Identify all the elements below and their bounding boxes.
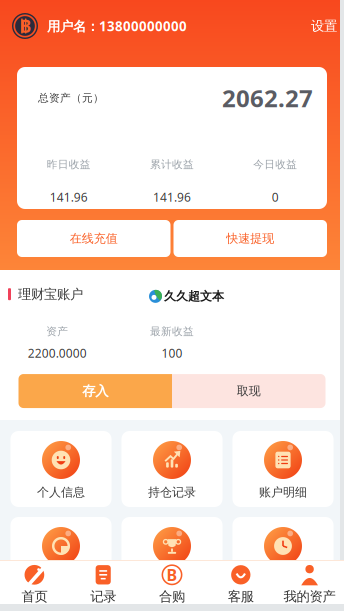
staticText: 首页 [21, 588, 47, 605]
staticText: 资产 [46, 325, 68, 338]
staticText: 0 [272, 189, 279, 205]
staticText: 持仓记录 [148, 485, 196, 500]
button[interactable]: 在线充值 [17, 220, 170, 257]
button[interactable]: B [138, 561, 206, 604]
staticText: 设置 [311, 18, 337, 34]
staticText: 昨日收益 [47, 158, 91, 171]
button[interactable] [232, 517, 333, 593]
staticText: 2062.27 [222, 82, 313, 114]
staticText: 理财宝账户 [18, 286, 83, 302]
staticText: 2200.0000 [28, 345, 87, 361]
staticText: 账户明细 [259, 485, 307, 500]
staticText: 快速提现 [226, 231, 274, 246]
button[interactable]: 记录 [69, 561, 138, 604]
staticText: 累计收益 [150, 158, 194, 171]
staticText: 用户名：13800000000 [47, 17, 187, 35]
staticText: 取现 [237, 384, 261, 398]
button[interactable] [10, 517, 111, 593]
button[interactable]: 我的资产 [275, 561, 344, 604]
staticText: 今日收益 [253, 158, 297, 171]
button[interactable]: 取现 [172, 374, 325, 408]
staticText: 总资产（元） [38, 91, 104, 104]
button[interactable]: 持仓记录 [121, 431, 222, 507]
button[interactable]: 账户明细 [232, 431, 333, 507]
button[interactable]: 客服 [206, 561, 275, 604]
staticText: 我的资产 [284, 588, 336, 605]
staticText: 久久超文本 [164, 289, 224, 304]
staticText: B [20, 14, 32, 37]
staticText: 141.96 [50, 189, 88, 205]
button[interactable]: 设置 [308, 13, 340, 39]
button[interactable]: 快速提现 [173, 220, 327, 257]
staticText: 合购 [159, 588, 185, 605]
staticText: 个人信息 [37, 485, 85, 500]
staticText: 在线充值 [70, 231, 118, 246]
staticText: 141.96 [153, 189, 191, 205]
button[interactable]: 个人信息 [10, 431, 111, 507]
staticText: 100 [161, 345, 182, 361]
staticText: 客服 [228, 588, 254, 605]
staticText: B [166, 564, 177, 585]
staticText: 存入 [82, 383, 108, 399]
button[interactable] [121, 517, 222, 593]
button[interactable]: 首页 [0, 561, 69, 604]
button[interactable]: 存入 [18, 374, 172, 408]
staticText: 最新收益 [150, 325, 194, 338]
staticText: 记录 [90, 588, 116, 605]
